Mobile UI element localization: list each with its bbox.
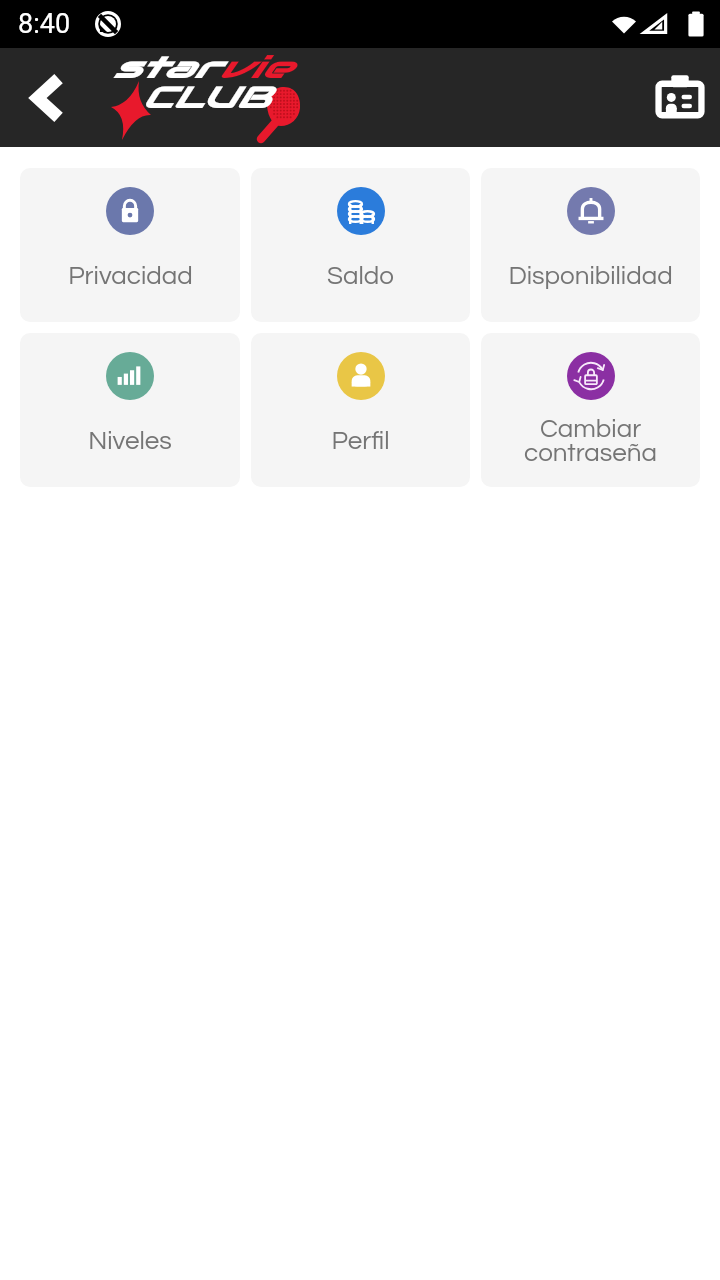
button[interactable]: Cambiar contraseña [481,333,700,487]
button[interactable]: Privacidad [20,168,240,322]
staticText: Saldo [327,263,394,290]
staticText: CLUB [141,79,269,116]
staticText: Cambiar contraseña [524,416,657,467]
button[interactable]: Saldo [251,168,470,322]
button[interactable]: Profile card [647,65,713,131]
staticText: Perfil [331,428,390,455]
staticText: star [112,49,218,86]
staticText: Niveles [88,428,172,455]
button[interactable]: Perfil [251,333,470,487]
button[interactable]: Back [18,68,78,128]
staticText: 8:40 [18,8,71,40]
staticText: Disponibilidad [508,263,673,290]
staticText: Privacidad [68,263,193,290]
button[interactable]: Niveles [20,333,240,487]
button[interactable]: Disponibilidad [481,168,700,322]
staticText: vie [218,49,290,86]
